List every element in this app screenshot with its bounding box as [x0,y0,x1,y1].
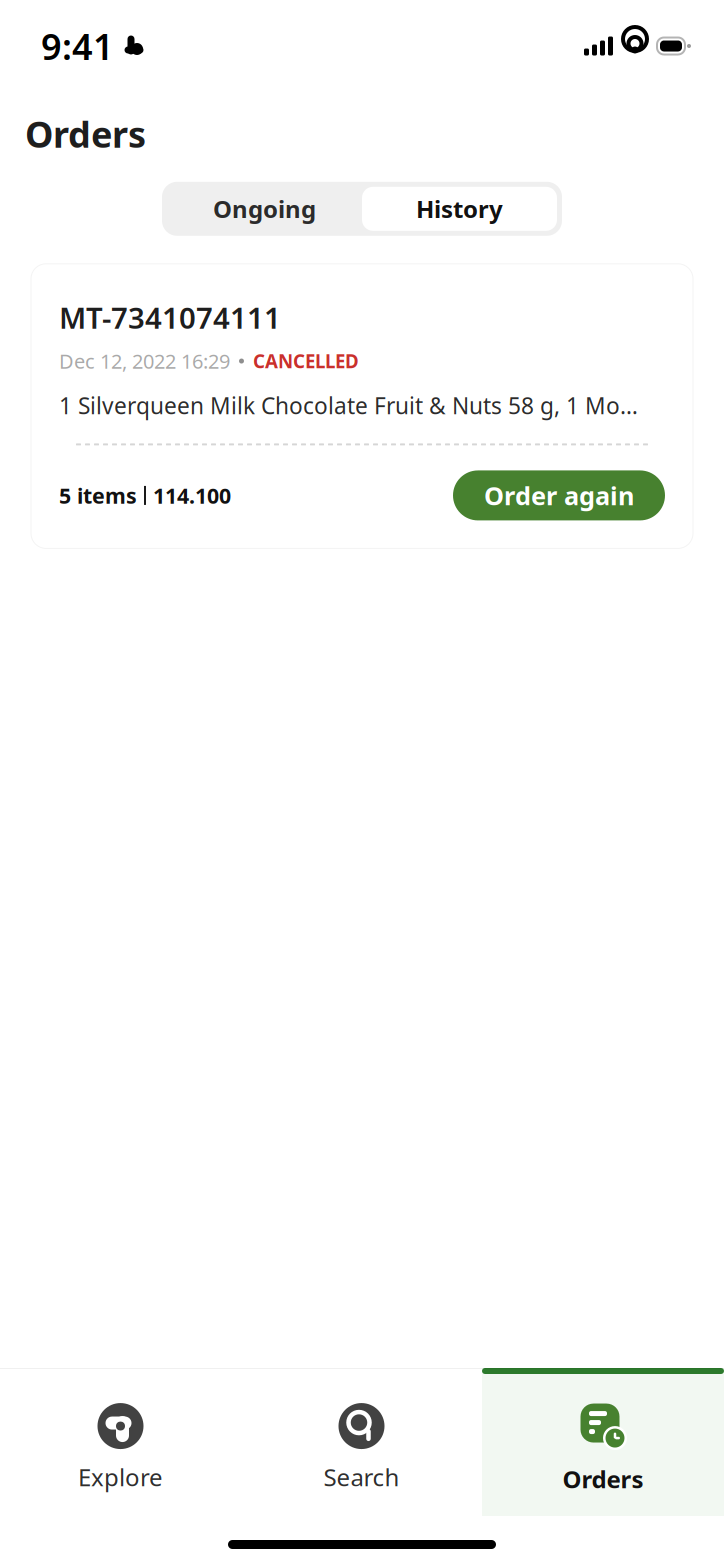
staticText: 114.100 [153,481,231,510]
staticText: Orders [25,110,146,158]
staticText: Ongoing [213,193,316,225]
staticText: 1 Silverqueen Milk Chocolate Fruit & Nut… [59,390,638,420]
staticText: 9:41 [41,22,114,70]
staticText: Explore [78,1461,163,1493]
staticText: History [416,193,503,225]
staticText: Order again [484,479,634,512]
staticText: MT-7341074111 [59,298,281,337]
staticText: 5 items [59,481,137,510]
button[interactable]: History [362,187,557,231]
staticText: Orders [562,1463,643,1495]
staticText: Dec 12, 2022 16:29 [59,348,230,374]
button[interactable]: MT-7341074111 [31,264,693,548]
button[interactable]: Search [241,1368,482,1516]
button[interactable]: Explore [0,1368,241,1516]
staticText: Search [323,1461,399,1493]
button[interactable]: Ongoing [167,187,362,231]
staticText: CANCELLED [253,349,359,373]
button[interactable]: Orders [482,1368,724,1516]
